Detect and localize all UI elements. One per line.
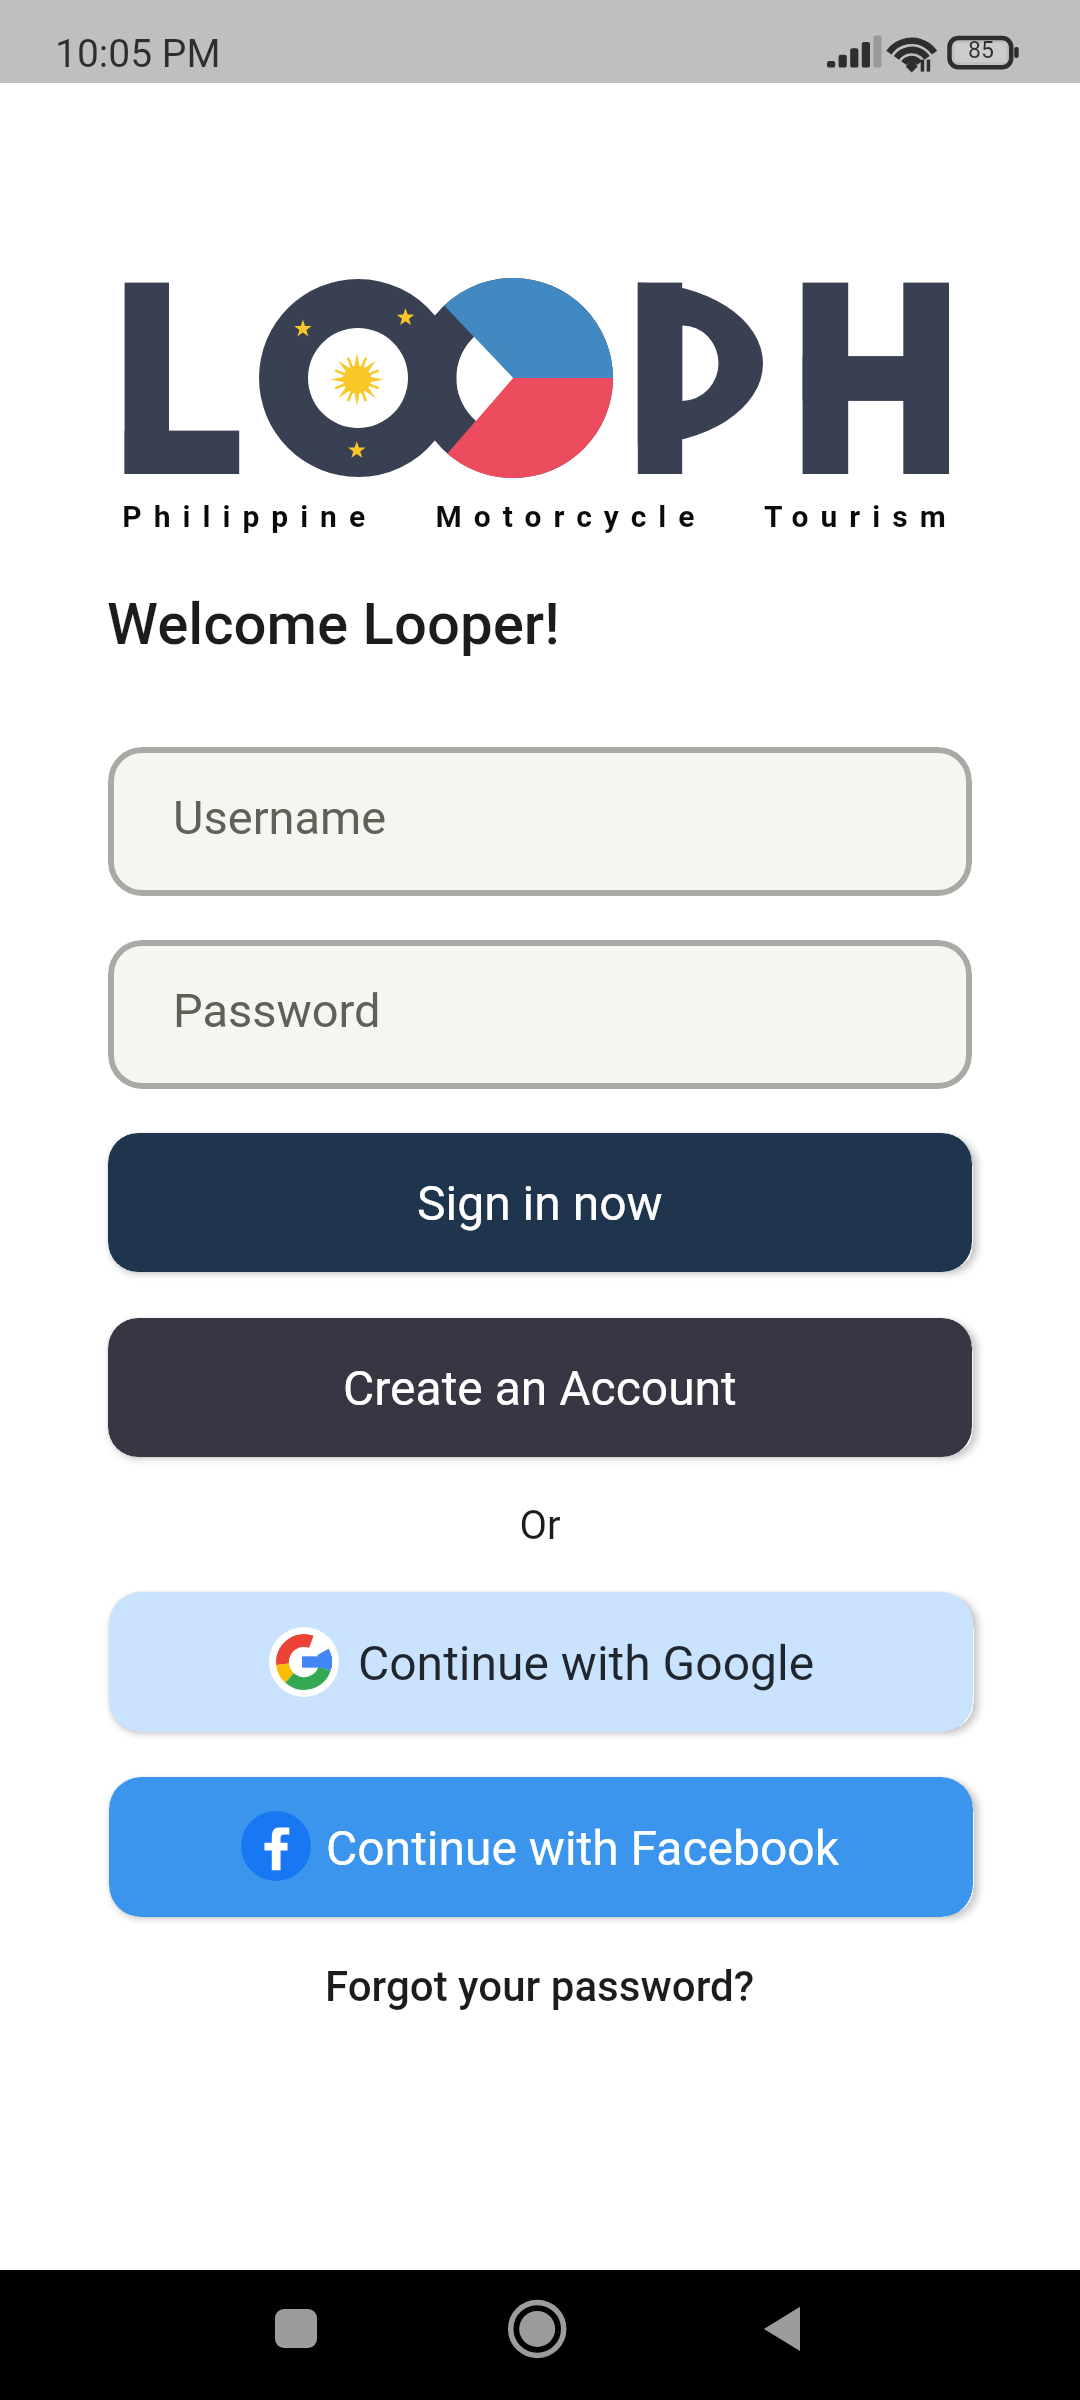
button[interactable]: Continue with Google [109,1592,973,1732]
button[interactable]: Recents [246,2270,346,2400]
button[interactable]: Continue with Facebook [109,1777,973,1917]
staticText: Or [0,1502,1080,1549]
button[interactable]: Sign in now [108,1133,972,1272]
staticText: 10:05 PM [55,31,221,77]
button[interactable]: Password [108,940,972,1089]
staticText: Username [173,790,387,845]
button[interactable]: Create an Account [108,1318,972,1457]
staticText: Continue with Facebook [326,1820,840,1876]
button[interactable]: Forgot your password? [0,1951,1080,2021]
staticText: Forgot your password? [325,1962,755,2011]
button[interactable]: Home [487,2270,587,2400]
staticText: Welcome Looper! [107,590,560,658]
staticText: Password [173,983,381,1038]
staticText: 85 [968,37,994,64]
staticText: Create an Account [343,1360,737,1416]
staticText: Continue with Google [358,1635,815,1691]
button[interactable]: Back [732,2270,832,2400]
staticText: Philippine Motorcycle Tourism [0,499,1080,534]
button[interactable]: Username [108,747,972,896]
staticText: Sign in now [417,1175,663,1231]
